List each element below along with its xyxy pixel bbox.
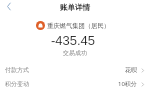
staticText: 积分变动 xyxy=(5,80,29,88)
staticText: -435.45 xyxy=(0,33,148,48)
staticText: 账单详情 xyxy=(0,3,150,12)
staticText: 10积分 xyxy=(118,80,137,88)
staticText: 花呗 xyxy=(125,66,137,74)
staticText: 付款方式 xyxy=(5,66,29,74)
button[interactable]: 付款方式 xyxy=(0,63,150,77)
staticText: 交易成功 xyxy=(0,49,150,57)
button[interactable]: 积分变动 xyxy=(0,77,150,91)
button[interactable]: Back xyxy=(2,0,16,13)
staticText: 重庆燃气集团（居民） xyxy=(47,22,110,30)
